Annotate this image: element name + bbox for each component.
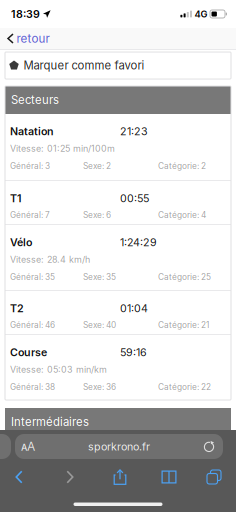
staticText: T2 <box>10 302 24 315</box>
staticText: Sexe: 36 <box>83 382 116 392</box>
staticText: retour <box>16 31 49 45</box>
staticText: Général: 38 <box>10 382 55 392</box>
staticText: 1:24:29 <box>120 236 157 249</box>
staticText: Catégorie: 21 <box>158 320 209 330</box>
staticText: Catégorie: 2 <box>158 161 206 171</box>
staticText: Vélo <box>10 236 32 249</box>
staticText: 59:16 <box>120 346 147 359</box>
staticText: Intermédiaires <box>11 415 89 429</box>
button[interactable]: Back <box>0 465 33 489</box>
staticText: Course <box>10 346 47 359</box>
staticText: ᴀA <box>21 439 35 454</box>
staticText: Catégorie: 22 <box>158 382 211 392</box>
staticText: Vitesse: 28.4 km/h <box>10 254 90 265</box>
staticText: 00:55 <box>120 192 149 205</box>
staticText: Vitesse: 01:25 min/100m <box>10 143 115 154</box>
button[interactable]: Share <box>0 465 134 489</box>
staticText: Sexe: 40 <box>83 320 116 330</box>
staticText: Général: 35 <box>10 272 55 282</box>
staticText: 4G <box>194 8 207 20</box>
staticText: Général: 3 <box>10 161 50 171</box>
button[interactable]: retour <box>0 28 55 49</box>
button[interactable]: Marquer comme favori <box>5 52 231 79</box>
staticText: 21:23 <box>120 125 148 138</box>
staticText: Sexe: 2 <box>83 161 111 171</box>
staticText: 18:39 <box>11 7 40 20</box>
staticText: T1 <box>10 192 22 205</box>
button[interactable]: sporkrono.fr <box>15 434 223 459</box>
button[interactable]: Tabs <box>0 465 228 489</box>
staticText: Sexe: 6 <box>83 210 111 220</box>
staticText: Vitesse: 05:03 min/km <box>10 364 107 375</box>
staticText: Catégorie: 4 <box>158 210 206 220</box>
staticText: Marquer comme favori <box>23 59 144 72</box>
staticText: Secteurs <box>11 93 59 107</box>
button[interactable]: Bookmarks <box>0 465 183 489</box>
button[interactable]: Forward <box>0 465 84 489</box>
staticText: Sexe: 35 <box>83 272 116 282</box>
staticText: sporkrono.fr <box>88 440 150 453</box>
staticText: Natation <box>10 125 54 138</box>
staticText: Catégorie: 25 <box>158 272 211 282</box>
staticText: 01:04 <box>120 302 148 315</box>
button[interactable]: Previous tab <box>0 434 11 459</box>
staticText: Général: 7 <box>10 210 50 220</box>
staticText: Général: 46 <box>10 320 55 330</box>
